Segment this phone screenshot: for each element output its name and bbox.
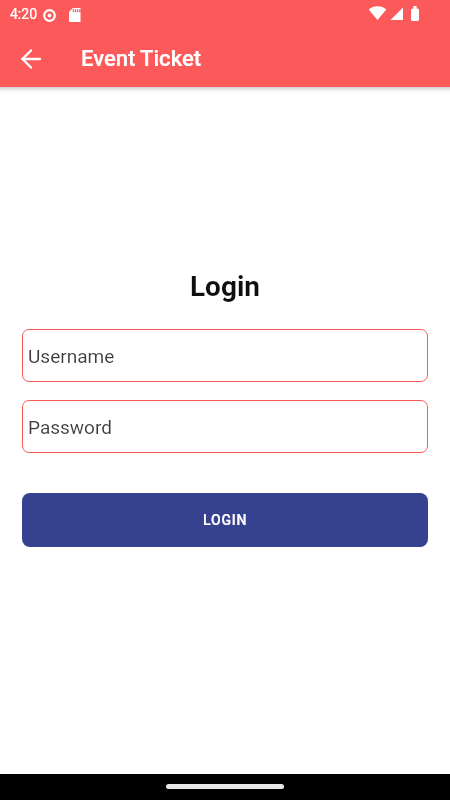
button[interactable] (7, 35, 55, 83)
button[interactable]: Username (22, 329, 428, 382)
staticText: Login (22, 270, 428, 303)
button[interactable]: LOGIN (22, 493, 428, 547)
staticText: Password (28, 416, 112, 438)
staticText: Username (28, 345, 115, 367)
staticText: Event Ticket (81, 46, 202, 72)
staticText: LOGIN (203, 512, 248, 528)
button[interactable]: Password (22, 400, 428, 453)
staticText: 4:20 (10, 6, 37, 22)
